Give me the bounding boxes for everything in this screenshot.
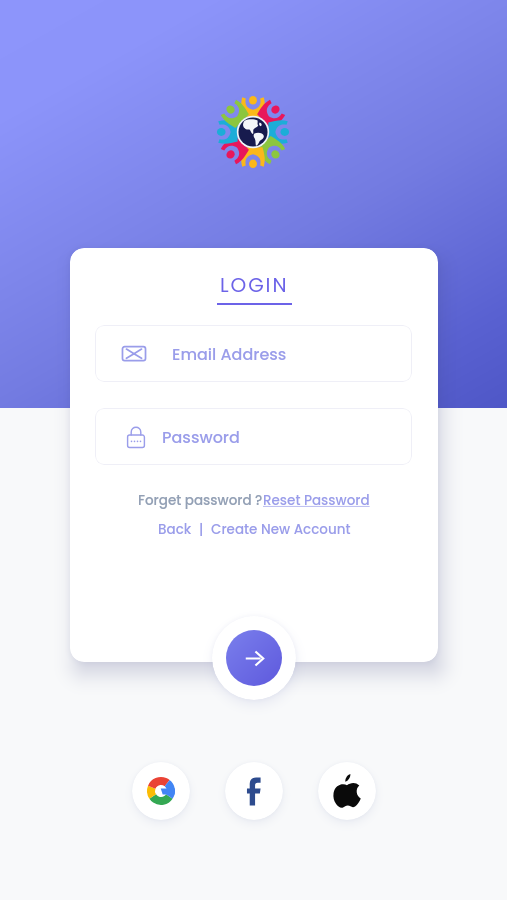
button[interactable]: Sign in with Apple <box>318 762 376 820</box>
staticText: Back <box>158 520 192 539</box>
button[interactable]: Back <box>158 520 192 539</box>
staticText: Password <box>162 426 240 448</box>
button[interactable]: Password <box>95 408 412 465</box>
button[interactable]: Sign in with Google <box>132 762 190 820</box>
staticText: LOGIN <box>220 271 289 299</box>
button[interactable]: Reset Password <box>263 491 370 510</box>
staticText: Email Address <box>172 343 287 365</box>
button[interactable]: Login <box>226 630 282 686</box>
staticText: Reset Password <box>263 491 370 510</box>
button[interactable]: Sign in with Facebook <box>225 762 283 820</box>
button[interactable]: Create New Account <box>211 520 351 539</box>
staticText: | <box>192 520 211 539</box>
button[interactable]: Email Address <box>95 325 412 382</box>
staticText: Forget password ? <box>138 491 263 510</box>
staticText: Create New Account <box>211 520 351 539</box>
